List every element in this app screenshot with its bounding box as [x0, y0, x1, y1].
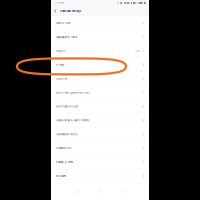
button[interactable]: Headphones & audio effects [51, 114, 149, 127]
staticText: Additional settings [60, 10, 81, 12]
button[interactable]: Backup & reset [51, 155, 149, 169]
button[interactable]: Mi Mover [51, 169, 149, 183]
staticText: India [135, 49, 140, 52]
staticText: Accessibility [56, 147, 71, 150]
staticText: 11:40 AM [55, 2, 64, 4]
staticText: Region [56, 49, 65, 52]
button[interactable]: Notification light [51, 100, 149, 114]
button[interactable]: Date & time [51, 16, 149, 30]
button[interactable]: One-handed mode [51, 127, 149, 141]
staticText: Date & time [56, 22, 70, 25]
button[interactable]: Languages & input [51, 30, 149, 44]
staticText: Mi Mover [56, 174, 66, 177]
staticText: Privacy [56, 63, 64, 66]
button[interactable]: Back [54, 7, 57, 14]
staticText: One-handed mode [56, 133, 77, 136]
button[interactable]: Quick ball [51, 72, 149, 86]
staticText: Notification light [56, 105, 78, 108]
button[interactable]: Region [51, 44, 149, 58]
staticText: Headphones & audio effects [56, 119, 89, 122]
staticText: Quick ball [56, 77, 68, 80]
button[interactable]: Privacy [51, 58, 149, 72]
staticText: Button and gesture shortcuts [56, 91, 89, 94]
staticText: Languages & input [56, 35, 77, 38]
staticText: Backup & reset [56, 161, 73, 164]
button[interactable]: Accessibility [51, 141, 149, 155]
button[interactable]: Button and gesture shortcuts [51, 86, 149, 100]
